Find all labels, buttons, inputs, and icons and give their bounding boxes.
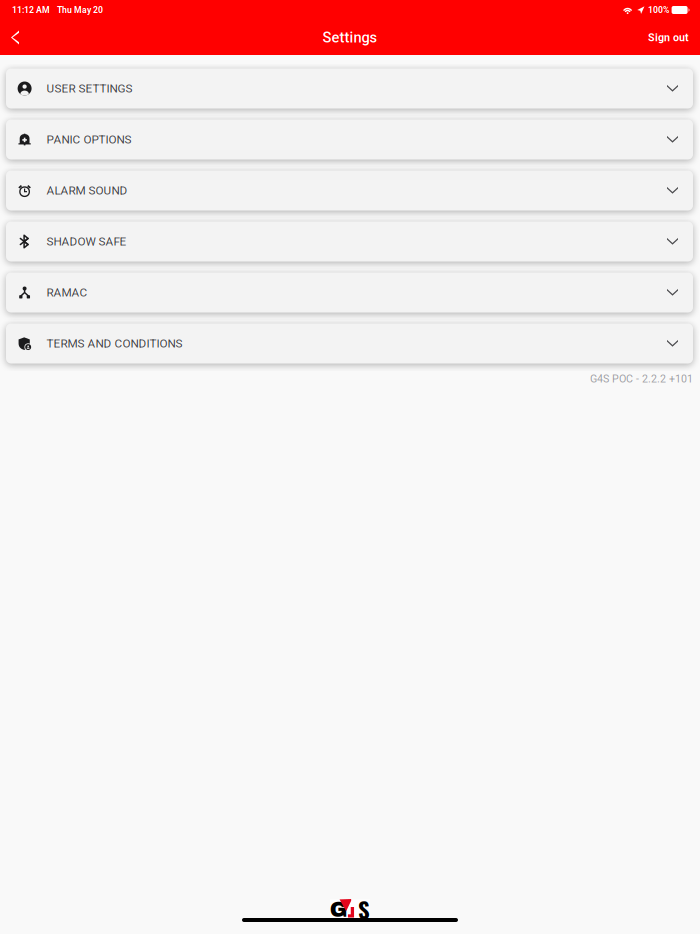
staticText: G — [330, 898, 348, 921]
staticText: USER SETTINGS — [46, 82, 132, 95]
button[interactable]: TERMS AND CONDITIONS — [6, 323, 693, 363]
staticText: G4S POC - 2.2.2 +101 — [590, 372, 693, 385]
staticText: TERMS AND CONDITIONS — [46, 337, 182, 350]
staticText: Settings — [322, 29, 377, 46]
button[interactable]: Back — [0, 20, 35, 55]
button[interactable]: Sign out — [634, 20, 700, 55]
button[interactable]: PANIC OPTIONS — [6, 119, 693, 159]
staticText: ALARM SOUND — [46, 184, 127, 197]
button[interactable]: USER SETTINGS — [6, 68, 693, 108]
button[interactable]: ALARM SOUND — [6, 170, 693, 210]
staticText: S — [358, 892, 370, 926]
staticText: RAMAC — [46, 286, 87, 299]
staticText: SHADOW SAFE — [46, 235, 126, 248]
button[interactable]: SHADOW SAFE — [6, 221, 693, 261]
staticText: PANIC OPTIONS — [46, 133, 131, 146]
staticText: Sign out — [648, 31, 689, 44]
staticText: 100% — [648, 5, 669, 15]
button[interactable]: RAMAC — [6, 272, 693, 312]
staticText: Thu May 20 — [57, 5, 103, 15]
staticText: 11:12 AM — [12, 5, 50, 15]
